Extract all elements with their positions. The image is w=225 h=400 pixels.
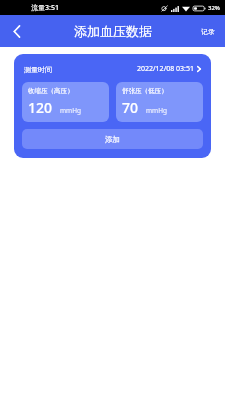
staticText: 120 — [28, 98, 53, 117]
staticText: 收缩压（高压） — [28, 87, 74, 95]
staticText: 测量时间 — [24, 65, 52, 74]
staticText: mmHg — [60, 106, 81, 115]
staticText: mmHg — [146, 106, 167, 115]
button[interactable]: Back — [0, 15, 33, 47]
staticText: 流量3:51 — [31, 3, 59, 13]
button[interactable]: 记录 — [191, 15, 225, 47]
staticText: 70 — [122, 98, 139, 117]
staticText: 记录 — [201, 27, 215, 36]
staticText: 32% — [208, 4, 220, 12]
staticText: 添加血压数据 — [74, 23, 152, 39]
button[interactable]: 添加 — [22, 129, 203, 149]
button[interactable]: 测量时间 — [22, 63, 203, 75]
staticText: 2022/12/08 03:51 — [137, 64, 194, 74]
staticText: 舒张压（低压） — [122, 87, 168, 95]
button[interactable]: 收缩压（高压） — [22, 82, 109, 122]
staticText: 添加 — [105, 135, 120, 144]
button[interactable]: 舒张压（低压） — [116, 82, 203, 122]
